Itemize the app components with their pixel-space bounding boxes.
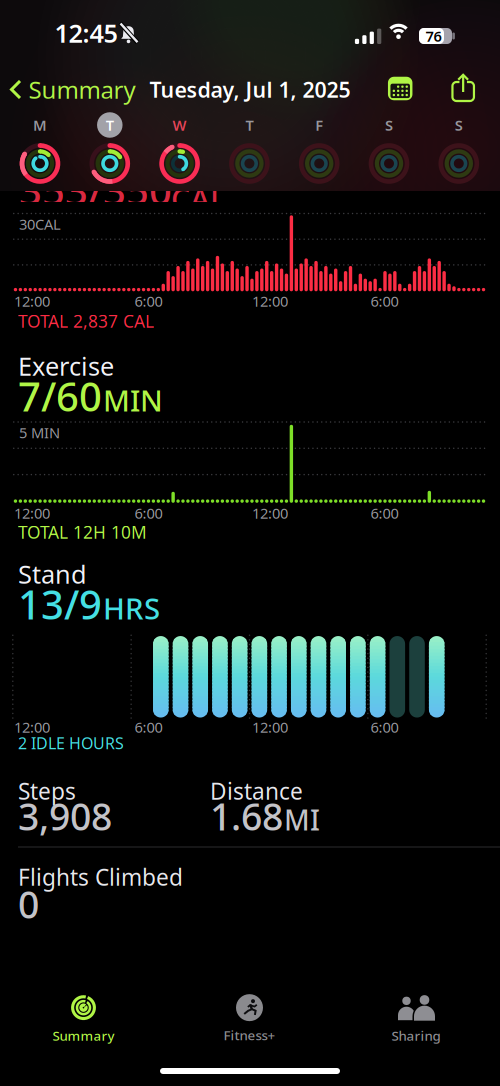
staticText: HRS bbox=[103, 589, 160, 628]
staticText: M bbox=[33, 115, 47, 135]
button[interactable]: Tuesday bbox=[88, 112, 132, 185]
staticText: TOTAL 12H 10M bbox=[18, 520, 147, 543]
staticText: Exercise bbox=[18, 349, 114, 383]
staticText: T bbox=[106, 115, 114, 135]
button[interactable]: Monday bbox=[18, 112, 62, 185]
staticText: Tuesday, Jul 1, 2025 bbox=[149, 75, 350, 104]
staticText: Flights Climbed bbox=[18, 862, 183, 892]
staticText: S bbox=[455, 115, 463, 135]
button[interactable]: Summary bbox=[52, 994, 114, 1044]
staticText: CAL bbox=[171, 178, 226, 219]
staticText: 5 MIN bbox=[19, 423, 60, 442]
staticText: S bbox=[385, 115, 393, 135]
staticText: TOTAL 2,837 CAL bbox=[18, 309, 154, 332]
button[interactable]: Friday bbox=[297, 112, 341, 185]
staticText: Distance bbox=[210, 776, 303, 806]
staticText: Fitness+ bbox=[223, 1026, 275, 1044]
staticText: MI bbox=[284, 801, 320, 838]
staticText: Sharing bbox=[391, 1027, 440, 1044]
staticText: W bbox=[173, 115, 187, 135]
staticText: 76 bbox=[425, 26, 441, 46]
staticText: 12:00 bbox=[14, 291, 50, 311]
staticText: 6:00 bbox=[134, 291, 162, 311]
button[interactable]: Sharing bbox=[391, 995, 440, 1044]
staticText: 2 IDLE HOURS bbox=[18, 732, 124, 754]
staticText: 30CAL bbox=[19, 214, 61, 234]
button[interactable]: Share bbox=[452, 74, 474, 101]
staticText: 12:00 bbox=[252, 503, 288, 523]
staticText: 13/9 bbox=[18, 577, 102, 630]
staticText: Summary bbox=[52, 1027, 114, 1044]
button[interactable]: Calendar bbox=[388, 77, 412, 100]
staticText: 12:00 bbox=[14, 503, 50, 523]
staticText: 6:00 bbox=[370, 717, 398, 737]
staticText: 1.68 bbox=[210, 791, 283, 841]
staticText: 7/60 bbox=[18, 369, 102, 422]
staticText: 12:45 bbox=[54, 16, 117, 50]
staticText: 12:00 bbox=[14, 717, 50, 737]
button[interactable]: Sunday bbox=[437, 112, 481, 185]
button[interactable]: Saturday bbox=[367, 112, 411, 185]
button[interactable]: Wednesday bbox=[158, 112, 202, 185]
staticText: 6:00 bbox=[134, 717, 162, 737]
staticText: F bbox=[315, 115, 323, 135]
staticText: MIN bbox=[103, 381, 163, 420]
staticText: T bbox=[245, 115, 253, 135]
staticText: 353/350 bbox=[19, 163, 172, 217]
button[interactable]: Fitness+ bbox=[223, 994, 275, 1044]
staticText: 6:00 bbox=[134, 503, 162, 523]
staticText: Stand bbox=[18, 557, 87, 591]
staticText: 6:00 bbox=[370, 291, 398, 311]
staticText: Steps bbox=[18, 776, 76, 806]
staticText: Summary bbox=[28, 74, 135, 105]
button[interactable]: Thursday bbox=[227, 112, 271, 185]
staticText: 3,908 bbox=[18, 791, 112, 841]
staticText: 0 bbox=[18, 879, 39, 929]
button[interactable]: Summary bbox=[9, 74, 135, 105]
staticText: 6:00 bbox=[370, 503, 398, 523]
staticText: 12:00 bbox=[252, 717, 288, 737]
staticText: 12:00 bbox=[252, 291, 288, 311]
